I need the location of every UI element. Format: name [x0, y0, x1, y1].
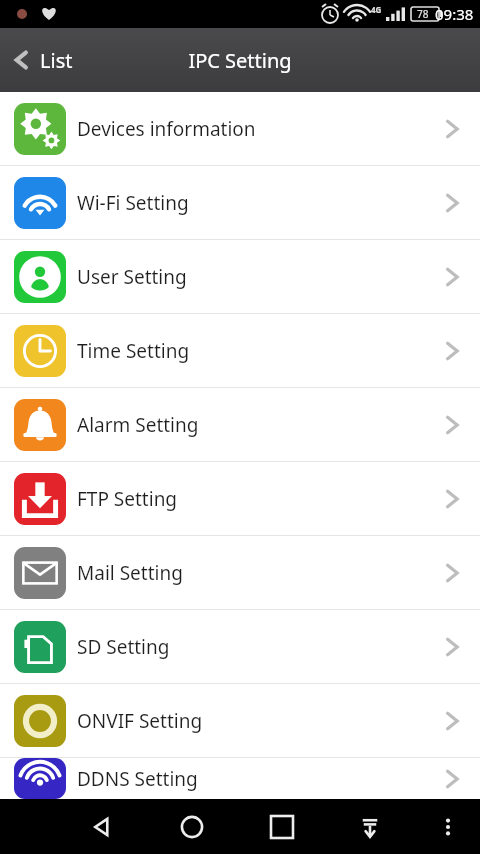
button[interactable]: Mail Setting: [0, 536, 480, 609]
button[interactable]: ONVIF Setting: [0, 684, 480, 757]
button[interactable]: Devices information: [0, 92, 480, 165]
staticText: SD Setting: [77, 634, 170, 660]
button[interactable]: Wi-Fi Setting: [0, 166, 480, 239]
staticText: ONVIF Setting: [77, 708, 203, 734]
button[interactable]: SD Setting: [0, 610, 480, 683]
button[interactable]: Recent apps: [252, 799, 312, 854]
staticText: List: [40, 47, 73, 74]
button[interactable]: Alarm Setting: [0, 388, 480, 461]
button[interactable]: User Setting: [0, 240, 480, 313]
staticText: 09:38: [435, 4, 474, 24]
staticText: FTP Setting: [77, 486, 178, 512]
button[interactable]: Back: [72, 799, 132, 854]
button[interactable]: More options: [418, 799, 478, 854]
button[interactable]: FTP Setting: [0, 462, 480, 535]
staticText: Alarm Setting: [77, 412, 199, 438]
button[interactable]: Hide navigation bar: [340, 799, 400, 854]
button[interactable]: List: [0, 28, 87, 92]
staticText: Wi-Fi Setting: [77, 190, 189, 216]
staticText: User Setting: [77, 264, 187, 290]
staticText: IPC Setting: [188, 47, 292, 74]
button[interactable]: DDNS Setting: [0, 758, 480, 799]
button[interactable]: Time Setting: [0, 314, 480, 387]
staticText: DDNS Setting: [77, 766, 198, 792]
staticText: Devices information: [77, 116, 256, 142]
staticText: 78: [417, 7, 429, 21]
staticText: Time Setting: [77, 338, 190, 364]
staticText: 4G: [371, 4, 382, 15]
staticText: Mail Setting: [77, 560, 183, 586]
button[interactable]: Home: [162, 799, 222, 854]
